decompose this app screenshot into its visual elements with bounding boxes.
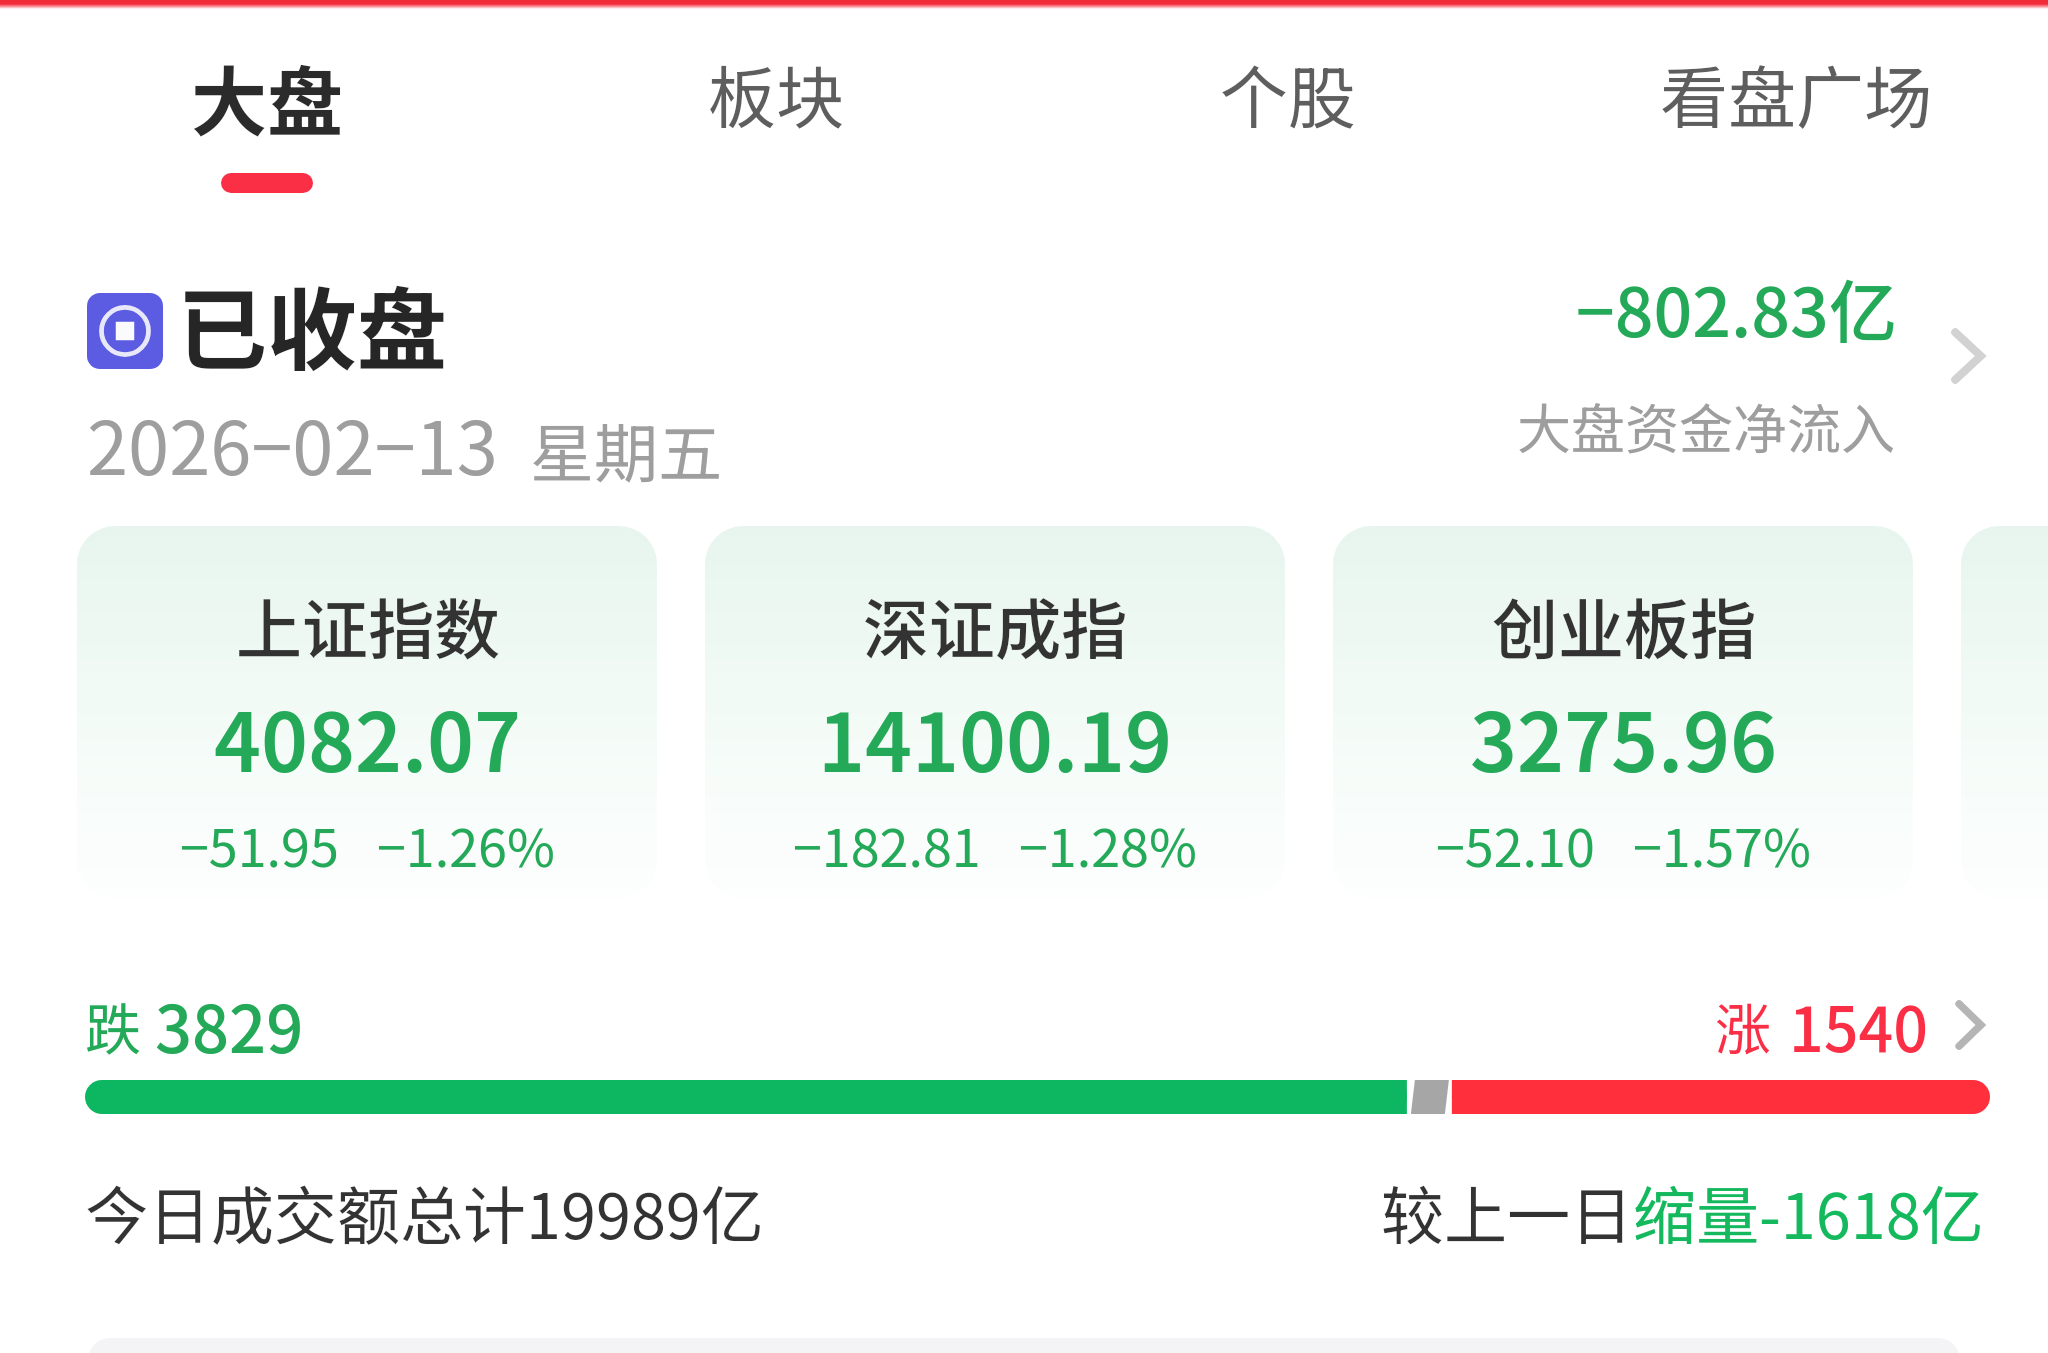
staticText: 星期五 — [530, 403, 722, 496]
staticText: 大盘 — [191, 42, 343, 152]
button[interactable]: 涨 — [1715, 975, 1987, 1075]
staticText: 上证指数 — [236, 577, 500, 673]
staticText: 3829 — [155, 978, 304, 1072]
staticText: 今日成交额总计19989亿 — [85, 1166, 764, 1257]
staticText: 大盘资金净流入 — [1517, 386, 1895, 454]
button[interactable]: 创业板指 — [1333, 526, 1913, 898]
button[interactable]: 深证成指 — [705, 526, 1285, 898]
button[interactable]: 看盘广场 — [1566, 22, 2026, 200]
staticText: 板块 — [708, 44, 845, 142]
staticText: 跌 — [85, 985, 141, 1066]
staticText: −802.83亿 — [1576, 258, 1897, 356]
staticText: 1540 — [1789, 981, 1929, 1069]
button[interactable]: 科创50 — [1961, 526, 2048, 898]
staticText: 较上一日缩量-1618亿 — [1381, 1166, 1984, 1257]
staticText: 4082.07 — [214, 678, 522, 795]
button[interactable]: 板块 — [546, 22, 1006, 200]
staticText: 涨 — [1715, 985, 1771, 1066]
button[interactable]: −802.83亿 — [1512, 258, 2042, 454]
staticText: 深证成指 — [863, 577, 1127, 673]
staticText: −51.95 — [180, 807, 339, 882]
other: Market status — [87, 293, 163, 369]
staticText: −1.26% — [377, 807, 555, 882]
staticText: 3275.96 — [1470, 678, 1778, 795]
button[interactable]: 大盘 — [37, 22, 497, 200]
staticText: 看盘广场 — [1660, 44, 1933, 142]
staticText: −1.57% — [1633, 807, 1811, 882]
staticText: 创业板指 — [1492, 577, 1756, 673]
staticText: 已收盘 — [177, 259, 447, 389]
staticText: −52.10 — [1436, 807, 1595, 882]
staticText: 2026−02−13 — [87, 389, 498, 496]
staticText: −182.81 — [793, 807, 981, 882]
staticText: −1.28% — [1019, 807, 1197, 882]
button[interactable]: 上证指数 — [77, 526, 657, 898]
button[interactable]: 个股 — [1058, 22, 1518, 200]
staticText: 个股 — [1220, 44, 1357, 142]
staticText: 14100.19 — [818, 678, 1173, 795]
